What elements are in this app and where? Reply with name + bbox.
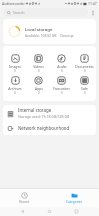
staticText: Documents (75, 64, 94, 69)
button[interactable]: Apps (27, 75, 50, 96)
staticText: Internal storage (18, 107, 52, 113)
button[interactable]: Local storage (3, 19, 96, 44)
button[interactable]: Search (3, 8, 88, 17)
staticText: Local storage (25, 26, 53, 32)
staticText: Safe (81, 86, 88, 91)
staticText: Storage used: 19.18 GB/128 GB (18, 114, 70, 119)
staticText: 0 (61, 91, 63, 95)
button[interactable]: Safe (73, 75, 96, 96)
button[interactable]: Internal storage (3, 105, 96, 121)
button[interactable]: Archives (3, 75, 27, 96)
staticText: 0 (38, 69, 40, 73)
staticText: Search (13, 10, 25, 15)
button[interactable]: Videos (27, 53, 50, 74)
button[interactable]: Back (18, 207, 27, 216)
staticText: Recent (19, 200, 30, 204)
button[interactable]: Documents (73, 53, 96, 74)
staticText: 0 (14, 91, 16, 95)
staticText: Favourites (53, 86, 70, 91)
staticText: 0 (84, 69, 86, 73)
button[interactable]: Recent (0, 189, 49, 207)
button[interactable]: Home (45, 207, 54, 216)
staticText: 0 (14, 69, 16, 73)
staticText: Apps (35, 86, 43, 91)
button[interactable]: Favourites (50, 75, 73, 96)
staticText: 11:47 (88, 1, 97, 6)
staticText: Images (9, 64, 21, 69)
staticText: Audio (57, 64, 67, 69)
staticText: Clean up (60, 33, 74, 37)
staticText: 0 (84, 91, 86, 95)
button[interactable]: Categories (49, 189, 99, 207)
staticText: Audiorecorder (2, 1, 25, 6)
staticText: 0 (38, 91, 40, 95)
button[interactable]: More options (88, 7, 98, 18)
staticText: Videos (33, 64, 44, 69)
button[interactable]: Audio (50, 53, 73, 74)
staticText: Categories (66, 200, 83, 204)
staticText: 0 (61, 69, 63, 73)
staticText: Network neighbourhood (18, 125, 70, 131)
staticText: Available: 108.82 GB (25, 33, 57, 37)
button[interactable]: Recents (72, 207, 81, 216)
staticText: Archives (8, 86, 22, 91)
button[interactable]: Images (3, 53, 27, 74)
button[interactable]: Network neighbourhood (3, 121, 96, 135)
